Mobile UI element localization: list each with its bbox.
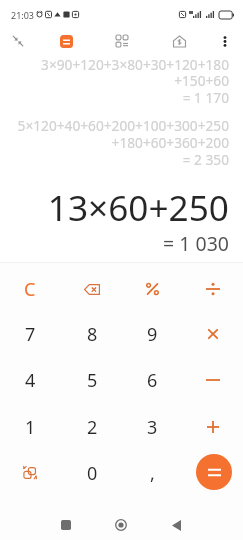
staticText: 21:03	[11, 9, 35, 21]
button[interactable]: 6	[122, 358, 182, 402]
staticText: 13×60+250	[47, 183, 229, 231]
button[interactable]: 1	[0, 405, 60, 449]
staticText: 4	[25, 368, 36, 393]
staticText: 2	[87, 415, 98, 440]
button[interactable]: Divide	[183, 267, 243, 311]
staticText: +150+60	[174, 71, 229, 90]
button[interactable]: 9	[122, 312, 182, 356]
button[interactable]: 4	[0, 358, 60, 402]
button[interactable]: Home	[104, 508, 138, 540]
button[interactable]: C	[0, 267, 60, 311]
staticText: 3×90+120+3×80+30+120+180	[41, 55, 229, 74]
staticText: 5×120+40+60+200+100+300+250	[17, 116, 229, 135]
button[interactable]: Backspace	[62, 267, 122, 311]
button[interactable]: Mortgage	[162, 24, 196, 58]
button[interactable]: Multiply	[183, 312, 243, 356]
staticText: 9	[147, 322, 158, 347]
button[interactable]: Back	[159, 508, 193, 540]
staticText: = 1 030	[163, 230, 229, 257]
staticText: = 1 170	[182, 88, 229, 107]
button[interactable]: Convert	[0, 451, 60, 495]
button[interactable]: ,	[122, 451, 182, 495]
staticText: 0	[87, 461, 98, 486]
button[interactable]: Percent	[122, 267, 182, 311]
button[interactable]: 8	[62, 312, 122, 356]
staticText: 3	[147, 415, 158, 440]
button[interactable]: Recents	[49, 508, 83, 540]
staticText: 5	[87, 368, 98, 393]
button[interactable]: 3	[122, 405, 182, 449]
staticText: C	[24, 277, 36, 302]
button[interactable]: Collapse	[1, 24, 35, 58]
button[interactable]: 2	[62, 405, 122, 449]
staticText: 1	[25, 415, 36, 440]
button[interactable]: 5	[62, 358, 122, 402]
button[interactable]: Calculator	[49, 24, 83, 58]
button[interactable]: Units	[105, 24, 139, 58]
staticText: ,	[150, 461, 155, 486]
button[interactable]: Minus	[183, 358, 243, 402]
staticText: 7	[25, 322, 36, 347]
button[interactable]: More options	[208, 24, 242, 58]
staticText: +180+60+360+200	[111, 133, 229, 152]
staticText: 6	[147, 368, 158, 393]
staticText: 8	[87, 322, 98, 347]
button[interactable]: 0	[62, 451, 122, 495]
button[interactable]: Equals	[196, 454, 232, 490]
button[interactable]: Plus	[183, 405, 243, 449]
staticText: = 2 350	[182, 150, 229, 169]
button[interactable]: 7	[0, 312, 60, 356]
